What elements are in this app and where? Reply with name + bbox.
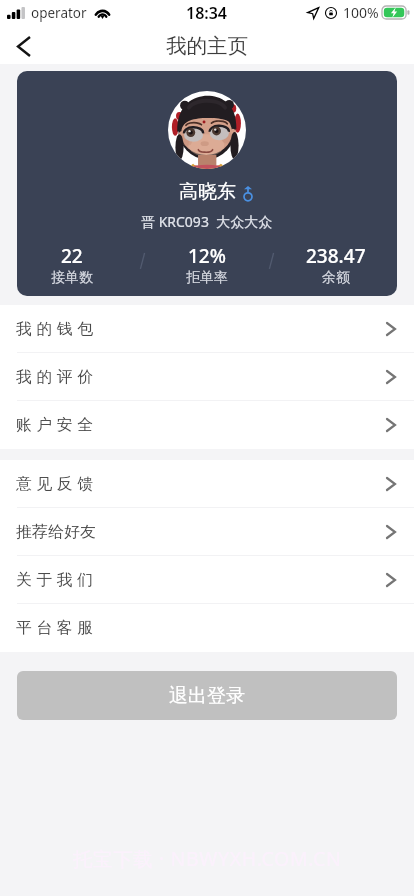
button[interactable]: 关于我们 (0, 556, 414, 604)
staticText: 12% (188, 243, 226, 269)
staticText: 关于我们 (16, 570, 98, 590)
staticText: 拒单率 (186, 269, 228, 287)
button[interactable]: 平台客服 (0, 604, 414, 652)
staticText: 238.47 (306, 243, 366, 269)
staticText: 高晓东 (179, 180, 236, 204)
staticText: 接单数 (51, 269, 93, 287)
button[interactable]: Back (0, 25, 48, 64)
button[interactable]: 我的钱包 (0, 305, 414, 353)
button[interactable]: 账户安全 (0, 401, 414, 449)
button[interactable]: 推荐给好友 (0, 508, 414, 556)
staticText: 100% (343, 3, 379, 22)
staticText: 账户安全 (16, 415, 98, 435)
button[interactable]: 意见反馈 (0, 460, 414, 508)
staticText: 我的评价 (16, 367, 98, 387)
staticText: 18:34 (186, 2, 228, 24)
staticText: operator (31, 4, 87, 22)
button[interactable]: 我的评价 (0, 353, 414, 401)
button[interactable]: 退出登录 (17, 671, 397, 720)
staticText: 推荐给好友 (16, 522, 96, 542)
staticText: 平台客服 (16, 618, 98, 638)
staticText: 我的钱包 (16, 319, 98, 339)
staticText: 余额 (322, 269, 350, 287)
staticText: 22 (61, 243, 83, 269)
staticText: 意见反馈 (16, 474, 98, 494)
staticText: 我的主页 (166, 33, 248, 59)
staticText: 退出登录 (169, 684, 245, 708)
staticText: 晋 KRC093 大众大众 (141, 212, 273, 231)
